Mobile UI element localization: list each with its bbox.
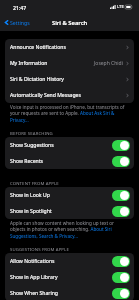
staticText: My Information <box>10 60 48 67</box>
staticText: Apple can show content when looking up t… <box>10 220 130 240</box>
staticText: Siri & Search <box>52 19 88 27</box>
button[interactable]: Show When Sharing <box>5 285 134 300</box>
button[interactable]: Toggle <box>112 256 130 267</box>
button[interactable]: Toggle <box>112 272 130 283</box>
staticText: Automatically Send Messages <box>10 92 81 99</box>
button[interactable]: Allow Notifications <box>5 253 134 269</box>
staticText: Announce Notifications <box>10 44 66 51</box>
button[interactable]: Settings <box>3 19 30 26</box>
staticText: BEFORE SEARCHING <box>10 130 53 136</box>
staticText: Siri & Dictation History <box>10 76 64 83</box>
staticText: SUGGESTIONS FROM APPLE <box>10 246 69 252</box>
button[interactable]: Automatically Send Messages <box>5 87 134 103</box>
staticText: Allow Notifications <box>10 258 55 265</box>
staticText: Show Suggestions <box>10 142 54 149</box>
staticText: Show When Sharing <box>10 290 58 297</box>
staticText: Show in App Library <box>10 274 58 281</box>
staticText: Show in Spotlight <box>10 208 52 215</box>
staticText: Voice input is processed on iPhone, but … <box>10 104 130 124</box>
button[interactable]: Toggle <box>112 156 130 167</box>
button[interactable]: Show in Spotlight <box>5 203 134 219</box>
staticText: Settings <box>10 19 30 26</box>
staticText: Joseph Chidi <box>94 60 123 67</box>
button[interactable]: Announce Notifications <box>5 39 134 55</box>
staticText: Show Recents <box>10 158 44 165</box>
button[interactable]: Show in App Library <box>5 269 134 285</box>
button[interactable]: Toggle <box>112 206 130 217</box>
staticText: LTE <box>117 4 124 10</box>
button[interactable]: Show in Look Up <box>5 187 134 203</box>
button[interactable]: Show Recents <box>5 153 134 169</box>
button[interactable]: My Information <box>5 55 134 71</box>
button[interactable]: Toggle <box>112 190 130 201</box>
button[interactable]: Siri & Dictation History <box>5 71 134 87</box>
staticText: Show in Look Up <box>10 192 50 199</box>
staticText: CONTENT FROM APPLE <box>10 180 59 186</box>
staticText: 21:47 <box>13 4 27 11</box>
button[interactable]: Toggle <box>112 288 130 299</box>
button[interactable]: Toggle <box>112 140 130 151</box>
button[interactable]: Show Suggestions <box>5 137 134 153</box>
